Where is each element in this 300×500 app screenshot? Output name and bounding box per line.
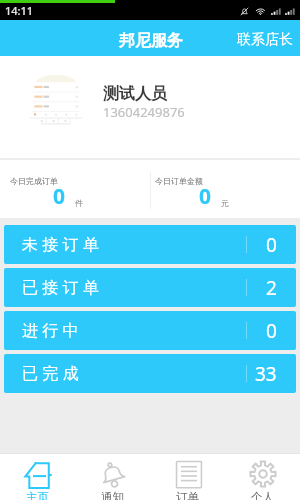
staticText: 0 bbox=[266, 232, 277, 258]
staticText: 主页 bbox=[26, 490, 49, 500]
button[interactable]: 主页 bbox=[0, 454, 75, 500]
button[interactable]: 已完成 bbox=[4, 354, 296, 393]
button[interactable]: 联系店长 bbox=[230, 24, 300, 56]
staticText: 邦尼服务 bbox=[119, 31, 183, 51]
button[interactable]: 今日完成订单 bbox=[0, 160, 150, 218]
button[interactable]: 个人 bbox=[225, 454, 300, 500]
staticText: 通知 bbox=[101, 490, 124, 500]
staticText: 今日订单金额 bbox=[155, 176, 203, 186]
button[interactable]: 进行中 bbox=[4, 311, 296, 350]
staticText: 订单 bbox=[176, 490, 199, 500]
button[interactable]: 通知 bbox=[75, 454, 150, 500]
staticText: 0 bbox=[266, 318, 277, 344]
button[interactable]: 已接订单 bbox=[4, 268, 296, 307]
staticText: 14:11 bbox=[5, 3, 34, 18]
staticText: 13604249876 bbox=[103, 103, 185, 121]
staticText: 未接订单 bbox=[22, 235, 104, 255]
staticText: 0 bbox=[53, 182, 66, 211]
staticText: 2 bbox=[266, 275, 277, 301]
staticText: 已接订单 bbox=[22, 278, 104, 298]
button[interactable]: 测试人员 bbox=[0, 56, 300, 158]
staticText: 个人 bbox=[251, 490, 274, 500]
button[interactable]: 订单 bbox=[150, 454, 225, 500]
staticText: 33 bbox=[255, 361, 277, 387]
button[interactable]: 今日订单金额 bbox=[150, 160, 300, 218]
staticText: 0 bbox=[199, 182, 212, 211]
staticText: 进行中 bbox=[22, 321, 83, 341]
staticText: 已完成 bbox=[22, 364, 83, 384]
staticText: 测试人员 bbox=[103, 84, 167, 104]
staticText: 今日完成订单 bbox=[10, 176, 58, 186]
button[interactable]: 未接订单 bbox=[4, 225, 296, 264]
staticText: 件 bbox=[75, 198, 83, 208]
staticText: 元 bbox=[221, 198, 229, 208]
staticText: 联系店长 bbox=[237, 31, 293, 49]
